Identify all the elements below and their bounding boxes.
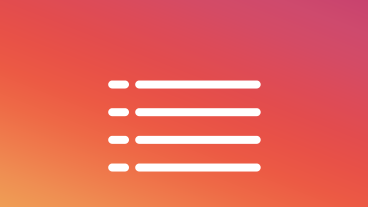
- button[interactable]: First item: [108, 80, 261, 88]
- button[interactable]: Third item: [108, 136, 261, 144]
- button[interactable]: Second item: [108, 108, 261, 116]
- button[interactable]: Fourth item: [108, 163, 261, 171]
